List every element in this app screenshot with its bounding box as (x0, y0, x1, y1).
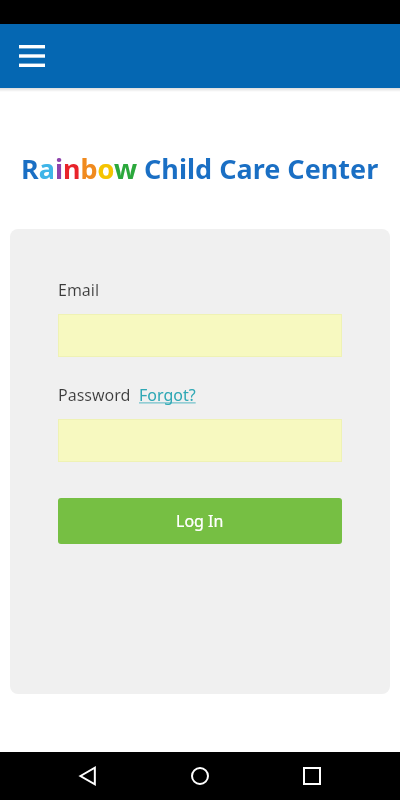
button[interactable]: Log In (58, 498, 342, 544)
staticText: Email (58, 279, 100, 301)
staticText: Log In (176, 510, 224, 532)
button[interactable]: Recent apps (288, 752, 336, 800)
button[interactable]: Menu (12, 36, 52, 76)
button[interactable]: Forgot? (139, 384, 196, 406)
button[interactable]: Home (176, 752, 224, 800)
staticText: Rainbow Child Care Center (21, 150, 379, 187)
staticText: Password (58, 384, 131, 406)
staticText: Forgot? (139, 384, 196, 406)
button[interactable]: Back (64, 752, 112, 800)
